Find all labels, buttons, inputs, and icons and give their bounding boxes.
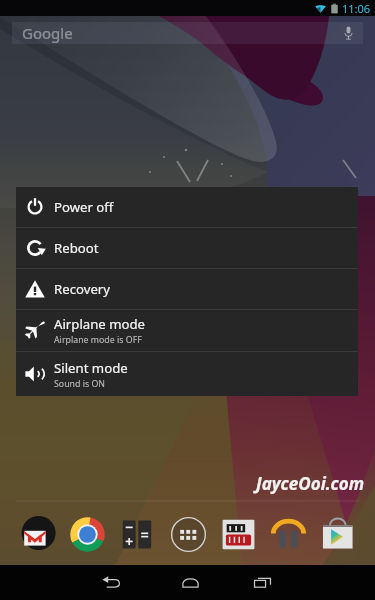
button[interactable]: Play Store xyxy=(313,511,363,557)
button[interactable]: Power off xyxy=(16,187,358,227)
staticText: Airplane mode is OFF xyxy=(54,334,142,346)
staticText: 11:06 xyxy=(342,1,371,16)
button[interactable]: Voice search xyxy=(333,22,363,44)
button[interactable]: Airplane mode xyxy=(16,310,358,351)
button[interactable]: Google xyxy=(12,22,363,44)
staticText: Sound is ON xyxy=(54,378,106,390)
button[interactable]: Reboot xyxy=(16,228,358,268)
button[interactable]: All apps xyxy=(163,511,213,557)
staticText: Reboot xyxy=(54,239,99,257)
button[interactable]: Play Music xyxy=(263,511,313,557)
button[interactable]: Gmail xyxy=(12,511,62,557)
button[interactable]: Recents xyxy=(232,565,292,600)
staticText: JayceOoi.com xyxy=(256,472,365,495)
staticText: Airplane mode xyxy=(54,315,146,333)
staticText: Google xyxy=(22,23,73,43)
staticText: Power off xyxy=(54,198,114,216)
button[interactable]: Silent mode xyxy=(16,352,358,396)
button[interactable]: Calculator xyxy=(112,511,162,557)
button[interactable]: Home xyxy=(160,565,220,600)
button[interactable]: Chrome xyxy=(62,511,112,557)
button[interactable]: Back xyxy=(81,565,141,600)
staticText: Recovery xyxy=(54,280,110,298)
button[interactable]: Recovery xyxy=(16,269,358,309)
button[interactable]: YouTube xyxy=(213,511,263,557)
staticText: Silent mode xyxy=(54,359,128,377)
